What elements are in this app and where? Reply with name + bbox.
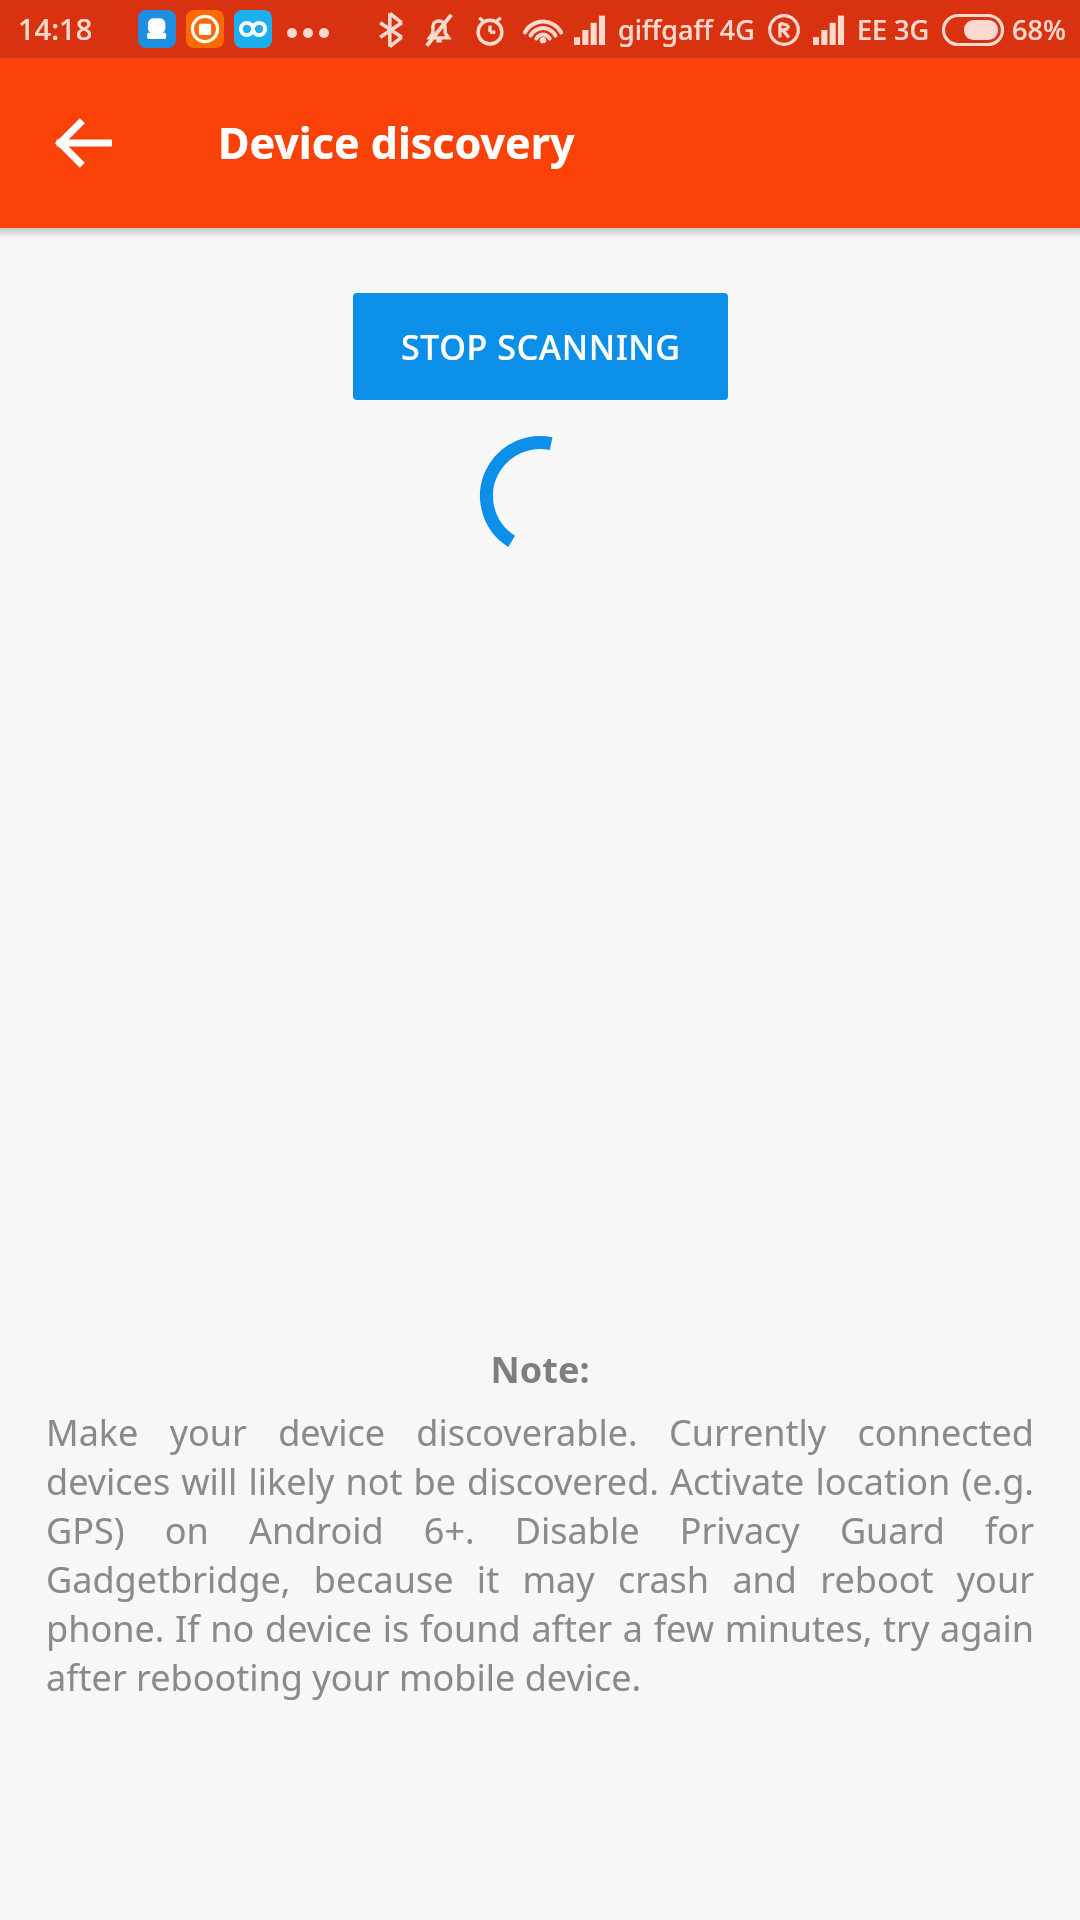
button[interactable]: STOP SCANNING [353,293,728,400]
staticText: STOP SCANNING [401,324,681,370]
staticText: giffgaff 4G [618,11,755,48]
staticText: Make your device discoverable. Currently… [46,1408,1034,1702]
staticText: Device discovery [218,113,575,172]
staticText: 68% [1012,11,1066,48]
staticText: 14:18 [18,9,93,48]
button[interactable]: Navigate up [28,87,140,199]
staticText: Note: [490,1345,590,1394]
staticText: EE 3G [857,11,930,48]
